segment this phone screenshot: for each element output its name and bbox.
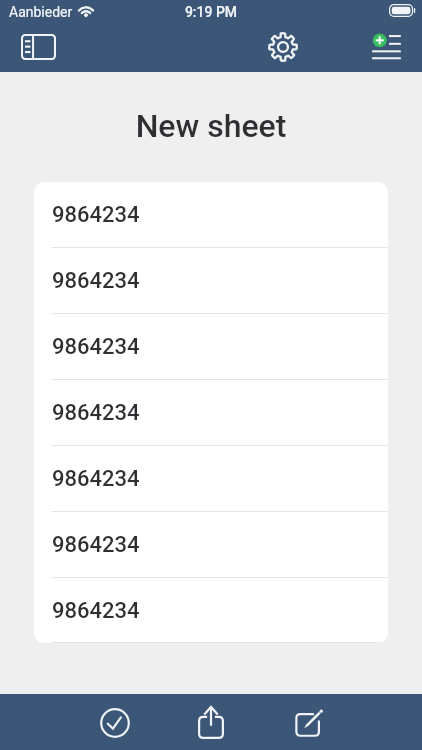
button[interactable]: 9864234: [34, 380, 388, 446]
button[interactable]: 9864234: [34, 578, 388, 643]
button[interactable]: 9864234: [34, 314, 388, 380]
button[interactable]: 9864234: [34, 512, 388, 578]
staticText: 9:19 PM: [0, 4, 422, 20]
staticText: 9864234: [52, 400, 140, 426]
button[interactable]: Add row: [364, 26, 409, 68]
button[interactable]: Compose: [287, 701, 331, 745]
button[interactable]: 9864234: [34, 182, 388, 248]
button[interactable]: 9864234: [34, 248, 388, 314]
staticText: 9864234: [52, 598, 140, 624]
button[interactable]: Sidebar: [15, 27, 62, 67]
button[interactable]: 9864234: [34, 446, 388, 512]
staticText: New sheet: [0, 107, 422, 145]
staticText: 9864234: [52, 466, 140, 492]
button[interactable]: Settings: [261, 25, 305, 69]
button[interactable]: Done: [93, 701, 137, 745]
staticText: 9864234: [52, 202, 140, 228]
staticText: Aanbieder: [9, 4, 73, 20]
button[interactable]: Share: [189, 700, 233, 744]
staticText: 9864234: [52, 268, 140, 294]
staticText: 9864234: [52, 334, 140, 360]
staticText: 9864234: [52, 532, 140, 558]
